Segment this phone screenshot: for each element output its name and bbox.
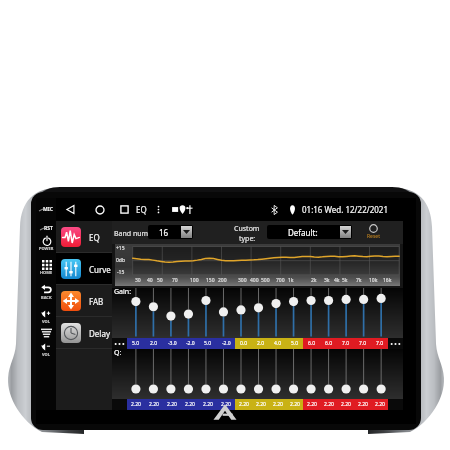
staticText: 3k	[324, 277, 330, 284]
staticText: 0.0	[240, 340, 248, 347]
staticText: 5.0	[132, 340, 140, 347]
staticText: 100	[190, 277, 199, 284]
button[interactable]: Curve	[56, 253, 112, 285]
staticText: +15	[116, 245, 125, 252]
staticText: 2.20	[358, 401, 368, 408]
staticText: 2.20	[167, 401, 177, 408]
staticText: Band num:	[114, 229, 151, 239]
staticText: 2.0	[150, 340, 158, 347]
button[interactable]: Next bands	[388, 338, 403, 349]
staticText: 500	[261, 277, 270, 284]
staticText: Curve	[89, 264, 111, 275]
staticText: 7.0	[359, 340, 367, 347]
button[interactable]: Reset	[367, 224, 380, 240]
staticText: 700	[276, 277, 285, 284]
staticText: 2.20	[185, 401, 195, 408]
staticText: Q:	[114, 348, 122, 358]
staticText: 2.0	[257, 340, 265, 347]
staticText: BACK	[41, 295, 52, 300]
staticText: 7.0	[376, 340, 384, 347]
staticText: 4k	[334, 277, 340, 284]
staticText: -2.0	[186, 340, 195, 347]
staticText: VOL	[42, 352, 50, 357]
button[interactable]: FAB	[56, 285, 112, 317]
staticText: -15	[117, 269, 125, 276]
staticText: 2.20	[341, 401, 351, 408]
staticText: 2.20	[131, 401, 141, 408]
staticText: 01:16 Wed. 12/22/2021	[302, 204, 389, 215]
staticText: 10k	[369, 277, 378, 284]
staticText: Default:	[288, 227, 318, 238]
button[interactable]: More options	[150, 201, 167, 218]
staticText: 40	[147, 277, 153, 284]
staticText: Custom	[234, 224, 260, 234]
staticText: FAB	[89, 296, 104, 307]
button[interactable]: 16	[148, 225, 193, 239]
staticText: 2.20	[324, 401, 334, 408]
staticText: Reset	[367, 233, 380, 240]
staticText: RST	[44, 225, 53, 232]
button[interactable]: EQ	[56, 221, 112, 253]
staticText: 1k	[288, 277, 294, 284]
staticText: type:	[239, 234, 256, 244]
staticText: 200	[218, 277, 227, 284]
button[interactable]: Power	[39, 236, 54, 251]
staticText: -3.0	[168, 340, 177, 347]
staticText: 2.20	[256, 401, 266, 408]
staticText: EQ	[89, 232, 100, 243]
staticText: 16	[159, 227, 169, 238]
staticText: 2.20	[290, 401, 300, 408]
button[interactable]: Recents	[116, 201, 133, 218]
button[interactable]: Home	[40, 260, 53, 275]
staticText: -2.0	[222, 340, 231, 347]
staticText: 400	[250, 277, 259, 284]
staticText: 4.0	[274, 340, 282, 347]
staticText: 50	[157, 277, 163, 284]
staticText: 300	[238, 277, 247, 284]
button[interactable]: Volume up	[41, 309, 51, 324]
button[interactable]: Previous bands	[112, 338, 127, 349]
staticText: 5k	[342, 277, 348, 284]
staticText: 2.20	[149, 401, 159, 408]
staticText: 30	[135, 277, 141, 284]
staticText: 2.20	[307, 401, 317, 408]
staticText: VOL	[42, 319, 50, 324]
button[interactable]: Delay	[56, 317, 112, 349]
staticText: 2.20	[375, 401, 385, 408]
staticText: 150	[206, 277, 215, 284]
staticText: Gain:	[114, 287, 132, 297]
button[interactable]: Status icons	[171, 204, 201, 215]
staticText: HOME	[40, 270, 53, 275]
staticText: 2.20	[221, 401, 231, 408]
button[interactable]: Default:	[267, 225, 352, 239]
staticText: 2.20	[203, 401, 213, 408]
button[interactable]: Equalizer	[41, 328, 52, 338]
button[interactable]: Volume down	[41, 342, 51, 357]
staticText: POWER	[39, 246, 54, 251]
staticText: 16k	[383, 277, 392, 284]
button[interactable]: Back	[62, 201, 79, 218]
staticText: 5.0	[204, 340, 212, 347]
staticText: EQ	[136, 204, 147, 215]
staticText: 6.0	[325, 340, 333, 347]
staticText: 7k	[356, 277, 362, 284]
staticText: 5.0	[291, 340, 299, 347]
button[interactable]: Back	[41, 284, 52, 300]
staticText: Delay	[89, 328, 110, 339]
staticText: 2.20	[239, 401, 249, 408]
staticText: 6.0	[308, 340, 316, 347]
staticText: 2k	[311, 277, 317, 284]
staticText: 70	[172, 277, 178, 284]
button[interactable]: EQ	[133, 199, 150, 220]
staticText: 0db	[116, 257, 126, 264]
staticText: MIC	[43, 206, 53, 213]
staticText: 2.20	[273, 401, 283, 408]
button[interactable]: Home	[91, 201, 108, 218]
staticText: 7.0	[342, 340, 350, 347]
